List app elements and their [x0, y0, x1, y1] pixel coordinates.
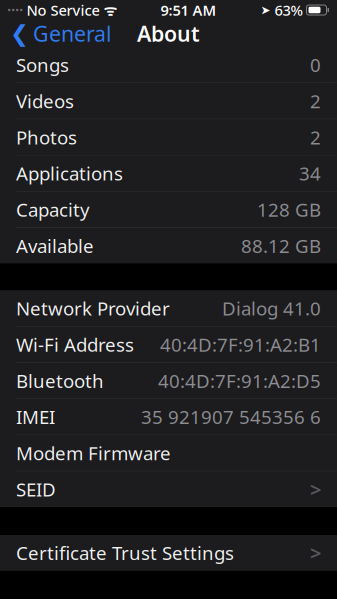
staticText: SEID: [16, 477, 56, 502]
staticText: 35 921907 545356 6: [141, 404, 321, 429]
staticText: Songs: [16, 52, 69, 77]
staticText: Wi-Fi Address: [16, 332, 134, 357]
staticText: Dialog 41.0: [222, 296, 321, 321]
staticText: Videos: [16, 89, 74, 113]
staticText: 2: [310, 125, 321, 150]
button[interactable]: SEID: [0, 471, 337, 507]
staticText: Available: [16, 233, 94, 258]
button[interactable]: Available: [0, 228, 337, 263]
button[interactable]: Videos: [0, 83, 337, 119]
staticText: 0: [310, 52, 321, 77]
button[interactable]: Network Provider: [0, 290, 337, 326]
staticText: Capacity: [16, 197, 90, 222]
staticText: No Service: [22, 0, 99, 20]
button[interactable]: Songs: [0, 47, 337, 82]
staticText: Certificate Trust Settings: [16, 540, 234, 565]
button[interactable]: Certificate Trust Settings: [0, 535, 337, 570]
button[interactable]: Applications: [0, 156, 337, 191]
staticText: Applications: [16, 161, 123, 186]
staticText: General: [33, 19, 112, 48]
staticText: ➤: [260, 3, 270, 17]
staticText: 2: [310, 89, 321, 113]
staticText: 63%: [270, 0, 302, 20]
staticText: Network Provider: [16, 296, 170, 321]
staticText: Photos: [16, 125, 77, 150]
staticText: ᯤ: [99, 0, 116, 20]
staticText: Modem Firmware: [16, 441, 171, 465]
staticText: 128 GB: [257, 197, 321, 222]
button[interactable]: Capacity: [0, 192, 337, 227]
staticText: 34: [299, 161, 321, 186]
button[interactable]: Modem Firmware: [0, 435, 337, 471]
button[interactable]: Photos: [0, 119, 337, 155]
staticText: 88.12 GB: [241, 233, 321, 258]
staticText: Bluetooth: [16, 368, 104, 393]
staticText: 40:4D:7F:91:A2:D5: [158, 368, 321, 393]
button[interactable]: IMEI: [0, 399, 337, 435]
staticText: >: [310, 476, 321, 503]
staticText: 9:51 AM: [160, 0, 216, 20]
button[interactable]: ❮: [0, 15, 112, 52]
button[interactable]: Wi-Fi Address: [0, 327, 337, 362]
staticText: >: [310, 539, 321, 566]
staticText: 40:4D:7F:91:A2:B1: [160, 332, 321, 357]
staticText: IMEI: [16, 404, 55, 429]
staticText: ❮: [10, 21, 29, 46]
button[interactable]: Bluetooth: [0, 363, 337, 398]
staticText: About: [137, 19, 200, 48]
